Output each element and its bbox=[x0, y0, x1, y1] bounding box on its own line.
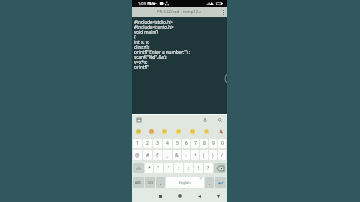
staticText: 8 bbox=[203, 140, 206, 147]
button[interactable]: ? bbox=[204, 163, 213, 173]
button[interactable]: Emoji bbox=[213, 125, 227, 138]
staticText: ₹ bbox=[156, 152, 159, 159]
button[interactable]: * bbox=[145, 163, 153, 173]
staticText: 0 bbox=[221, 140, 224, 147]
button[interactable]: 5 bbox=[173, 139, 181, 148]
button[interactable]: ) bbox=[209, 150, 217, 160]
staticText: 6 bbox=[185, 140, 188, 147]
button[interactable]: 1 bbox=[133, 139, 142, 148]
staticText: @ bbox=[135, 152, 140, 159]
button[interactable]: More options bbox=[220, 7, 227, 17]
button[interactable]: 6 bbox=[182, 139, 190, 148]
staticText: int x, y; bbox=[134, 39, 150, 44]
staticText: void main() bbox=[134, 29, 158, 34]
button[interactable]: Emoji bbox=[158, 125, 171, 138]
button[interactable]: @ bbox=[133, 150, 142, 160]
button[interactable]: Back bbox=[195, 192, 203, 200]
staticText: & bbox=[175, 152, 179, 159]
staticText: ( bbox=[203, 152, 205, 159]
staticText: ? bbox=[207, 165, 210, 172]
button[interactable]: ! bbox=[194, 163, 203, 173]
staticText: ; bbox=[188, 165, 190, 172]
staticText: PR-C42/sed - temp12.c bbox=[157, 9, 202, 15]
button[interactable]: ABC bbox=[133, 177, 144, 188]
staticText: 5 bbox=[176, 140, 179, 147]
button[interactable]: ₹ bbox=[153, 150, 162, 160]
staticText: 2 bbox=[146, 140, 149, 147]
staticText: #include<conio.h> bbox=[134, 24, 174, 29]
staticText: : bbox=[178, 165, 180, 172]
staticText: y=x*x; bbox=[134, 59, 148, 64]
button[interactable]: 0 bbox=[218, 139, 226, 148]
staticText: 4 bbox=[166, 140, 169, 147]
button[interactable]: Emoji bbox=[185, 125, 199, 138]
button[interactable]: Recents bbox=[156, 192, 164, 200]
button[interactable]: Home bbox=[176, 192, 184, 200]
button[interactable]: 9 bbox=[209, 139, 217, 148]
staticText: 3 bbox=[156, 140, 159, 147]
staticText: 1:09 PM bbox=[138, 1, 154, 6]
button[interactable]: Emoji bbox=[171, 125, 185, 138]
staticText: ) bbox=[212, 152, 214, 159]
staticText: , bbox=[160, 180, 162, 186]
button[interactable]: Hide keyboard bbox=[214, 192, 222, 200]
button[interactable]: 3 bbox=[153, 139, 162, 148]
staticText: 123 bbox=[147, 180, 153, 185]
staticText: scanf("%d",&x); bbox=[134, 54, 167, 59]
button[interactable]: 4 bbox=[163, 139, 172, 148]
staticText: 1 bbox=[136, 140, 139, 147]
staticText: + bbox=[194, 152, 197, 159]
button[interactable]: + bbox=[191, 150, 199, 160]
button[interactable]: & bbox=[173, 150, 181, 160]
button[interactable]: # bbox=[143, 150, 152, 160]
button[interactable]: , bbox=[156, 177, 165, 188]
staticText: ' bbox=[168, 165, 170, 172]
button[interactable]: 123 bbox=[145, 177, 155, 188]
staticText: clrscr(); bbox=[134, 44, 150, 49]
button[interactable]: Search bbox=[216, 116, 224, 124]
button[interactable]: . bbox=[205, 177, 214, 188]
button[interactable]: : bbox=[174, 163, 183, 173]
staticText: { bbox=[134, 34, 136, 39]
button[interactable]: Voice input bbox=[201, 116, 209, 124]
staticText: " bbox=[157, 165, 160, 172]
staticText: =\< bbox=[136, 166, 142, 171]
button[interactable]: - bbox=[182, 150, 190, 160]
staticText: / bbox=[221, 152, 223, 159]
button[interactable]: =\< bbox=[133, 163, 144, 173]
button[interactable]: ; bbox=[184, 163, 193, 173]
button[interactable]: / bbox=[218, 150, 226, 160]
button[interactable]: Emoji bbox=[199, 125, 213, 138]
button[interactable]: Clipboard bbox=[135, 116, 143, 124]
staticText: #include<stdio.h> bbox=[134, 19, 173, 24]
button[interactable]: 8 bbox=[200, 139, 208, 148]
staticText: printf(" bbox=[134, 64, 150, 69]
staticText: # bbox=[146, 152, 150, 159]
button[interactable]: " bbox=[154, 163, 163, 173]
staticText: * bbox=[148, 165, 151, 172]
button[interactable]: ' bbox=[164, 163, 173, 173]
staticText: - bbox=[185, 152, 187, 159]
button[interactable]: Space bbox=[166, 177, 204, 188]
button[interactable]: 2 bbox=[143, 139, 152, 148]
staticText: 7 bbox=[194, 140, 197, 147]
staticText: _ bbox=[166, 152, 169, 159]
staticText: English bbox=[179, 180, 191, 185]
staticText: . bbox=[209, 180, 211, 186]
button[interactable]: _ bbox=[163, 150, 172, 160]
button[interactable]: Enter bbox=[215, 177, 226, 188]
staticText: printf("Enter a number:") ; bbox=[134, 49, 190, 54]
button[interactable]: Backspace bbox=[214, 163, 226, 173]
button[interactable]: Emoji bbox=[145, 125, 158, 138]
staticText: ! bbox=[198, 165, 200, 172]
staticText: 9 bbox=[212, 140, 215, 147]
button[interactable]: 7 bbox=[191, 139, 199, 148]
button[interactable]: ( bbox=[200, 150, 208, 160]
button[interactable]: Emoji bbox=[132, 125, 145, 138]
staticText: ABC bbox=[135, 180, 142, 185]
